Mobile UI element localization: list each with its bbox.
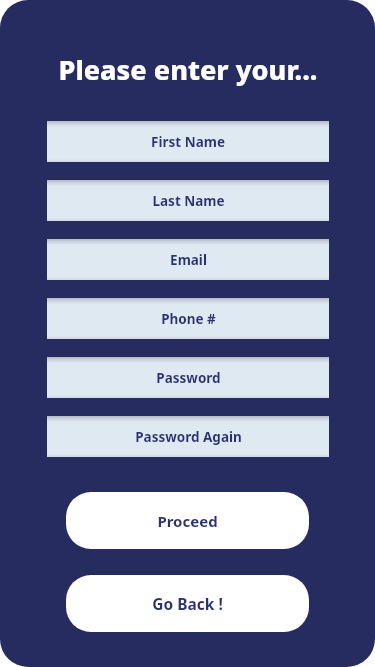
button[interactable]: Proceed bbox=[66, 492, 309, 549]
button[interactable]: Password bbox=[47, 357, 329, 398]
staticText: Proceed bbox=[157, 511, 218, 531]
staticText: First Name bbox=[151, 133, 225, 151]
button[interactable]: Email bbox=[47, 239, 329, 280]
staticText: Email bbox=[170, 251, 207, 269]
button[interactable]: Phone # bbox=[47, 298, 329, 339]
button[interactable]: Password Again bbox=[47, 416, 329, 457]
staticText: Last Name bbox=[152, 192, 225, 210]
button[interactable]: Last Name bbox=[47, 180, 329, 221]
staticText: Phone # bbox=[161, 310, 216, 328]
staticText: Password Again bbox=[135, 428, 242, 446]
staticText: Please enter your... bbox=[58, 51, 318, 88]
staticText: Password bbox=[156, 369, 221, 387]
button[interactable]: Go Back ! bbox=[66, 575, 309, 632]
button[interactable]: First Name bbox=[47, 121, 329, 162]
staticText: Go Back ! bbox=[152, 593, 223, 614]
